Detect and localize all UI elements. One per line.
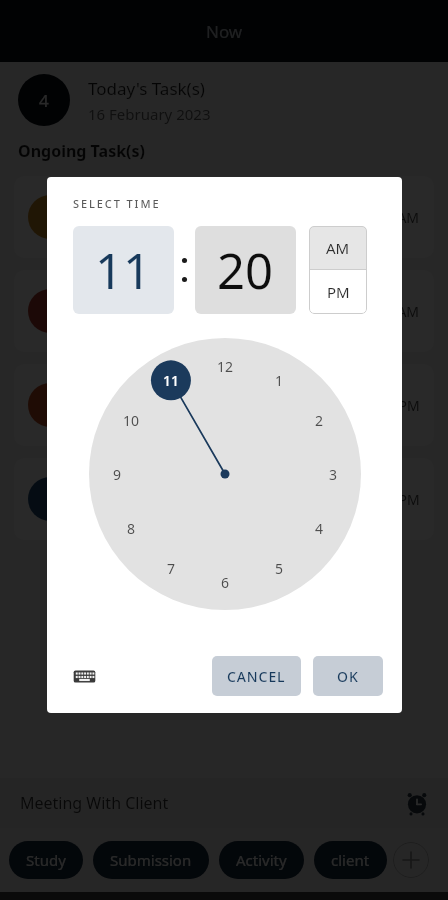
staticText: Meeting With Client [20,792,169,814]
staticText: 12 [217,357,234,376]
staticText: OK [337,667,359,686]
staticText: CANCEL [227,667,286,686]
staticText: Research Reading [86,300,358,322]
staticText: 10 [123,411,140,430]
staticText: PM [327,282,350,302]
button[interactable]: 1 [264,365,294,395]
button[interactable]: client [314,841,387,879]
staticText: 11 [163,371,180,390]
staticText: 9 [113,465,122,484]
button[interactable]: CANCEL [212,656,301,696]
button[interactable]: 11 [73,226,174,314]
button[interactable]: OK [313,656,383,696]
staticText: Ongoing Task(s) [18,140,145,162]
button[interactable]: Submission [93,841,209,879]
button[interactable]: 7 [156,553,186,583]
button[interactable]: Add tag [393,842,429,878]
staticText: 11 [95,237,152,304]
staticText: 11:30 AM [358,302,420,321]
button[interactable]: 2 [304,405,334,435]
staticText: Today's Task(s) [88,77,205,100]
staticText: 20 [217,237,274,304]
button[interactable]: Snooze alarm [400,786,434,820]
button[interactable]: PM [309,270,367,314]
staticText: 16 February 2023 [88,104,211,124]
staticText: Study [26,850,66,870]
staticText: 2 [315,411,324,430]
staticText: 4 [39,89,49,112]
staticText: Submission [110,850,192,870]
button[interactable]: 3 [318,459,348,489]
button[interactable]: Assignment Work [14,176,434,258]
staticText: 01:00 PM [359,396,420,415]
staticText: 04:15 PM [359,490,420,509]
button[interactable]: 11 [156,365,186,395]
button[interactable]: 9 [102,459,132,489]
staticText: 5 [275,559,284,578]
staticText: 7 [167,559,176,578]
staticText: Team Standup [86,394,359,416]
staticText: client [331,850,370,870]
staticText: Activity [236,850,287,870]
button[interactable]: 20 [195,226,296,314]
button[interactable]: Switch to text input [69,661,99,691]
button[interactable]: 12 [210,351,240,381]
staticText: Meeting With Client [86,488,359,510]
staticText: 4 [315,519,324,538]
button[interactable]: Study [9,841,83,879]
button[interactable]: 4 [304,513,334,543]
staticText: 8 [127,519,136,538]
button[interactable]: Activity [219,841,304,879]
staticText: 10:00 AM [358,208,420,227]
button[interactable]: Research Reading [14,270,434,352]
button[interactable]: 8 [116,513,146,543]
staticText: 1 [275,371,284,390]
staticText: Now [206,20,243,43]
button[interactable]: 10 [116,405,146,435]
staticText: AM [326,238,350,258]
button[interactable]: Team Standup [14,364,434,446]
button[interactable]: AM [309,226,367,269]
staticText: 6 [221,573,230,592]
staticText: SELECT TIME [73,196,161,211]
staticText: Assignment Work [86,206,358,228]
button[interactable]: 6 [210,567,240,597]
button[interactable]: Meeting With Client [14,458,434,540]
staticText: 3 [329,465,338,484]
button[interactable]: 5 [264,553,294,583]
